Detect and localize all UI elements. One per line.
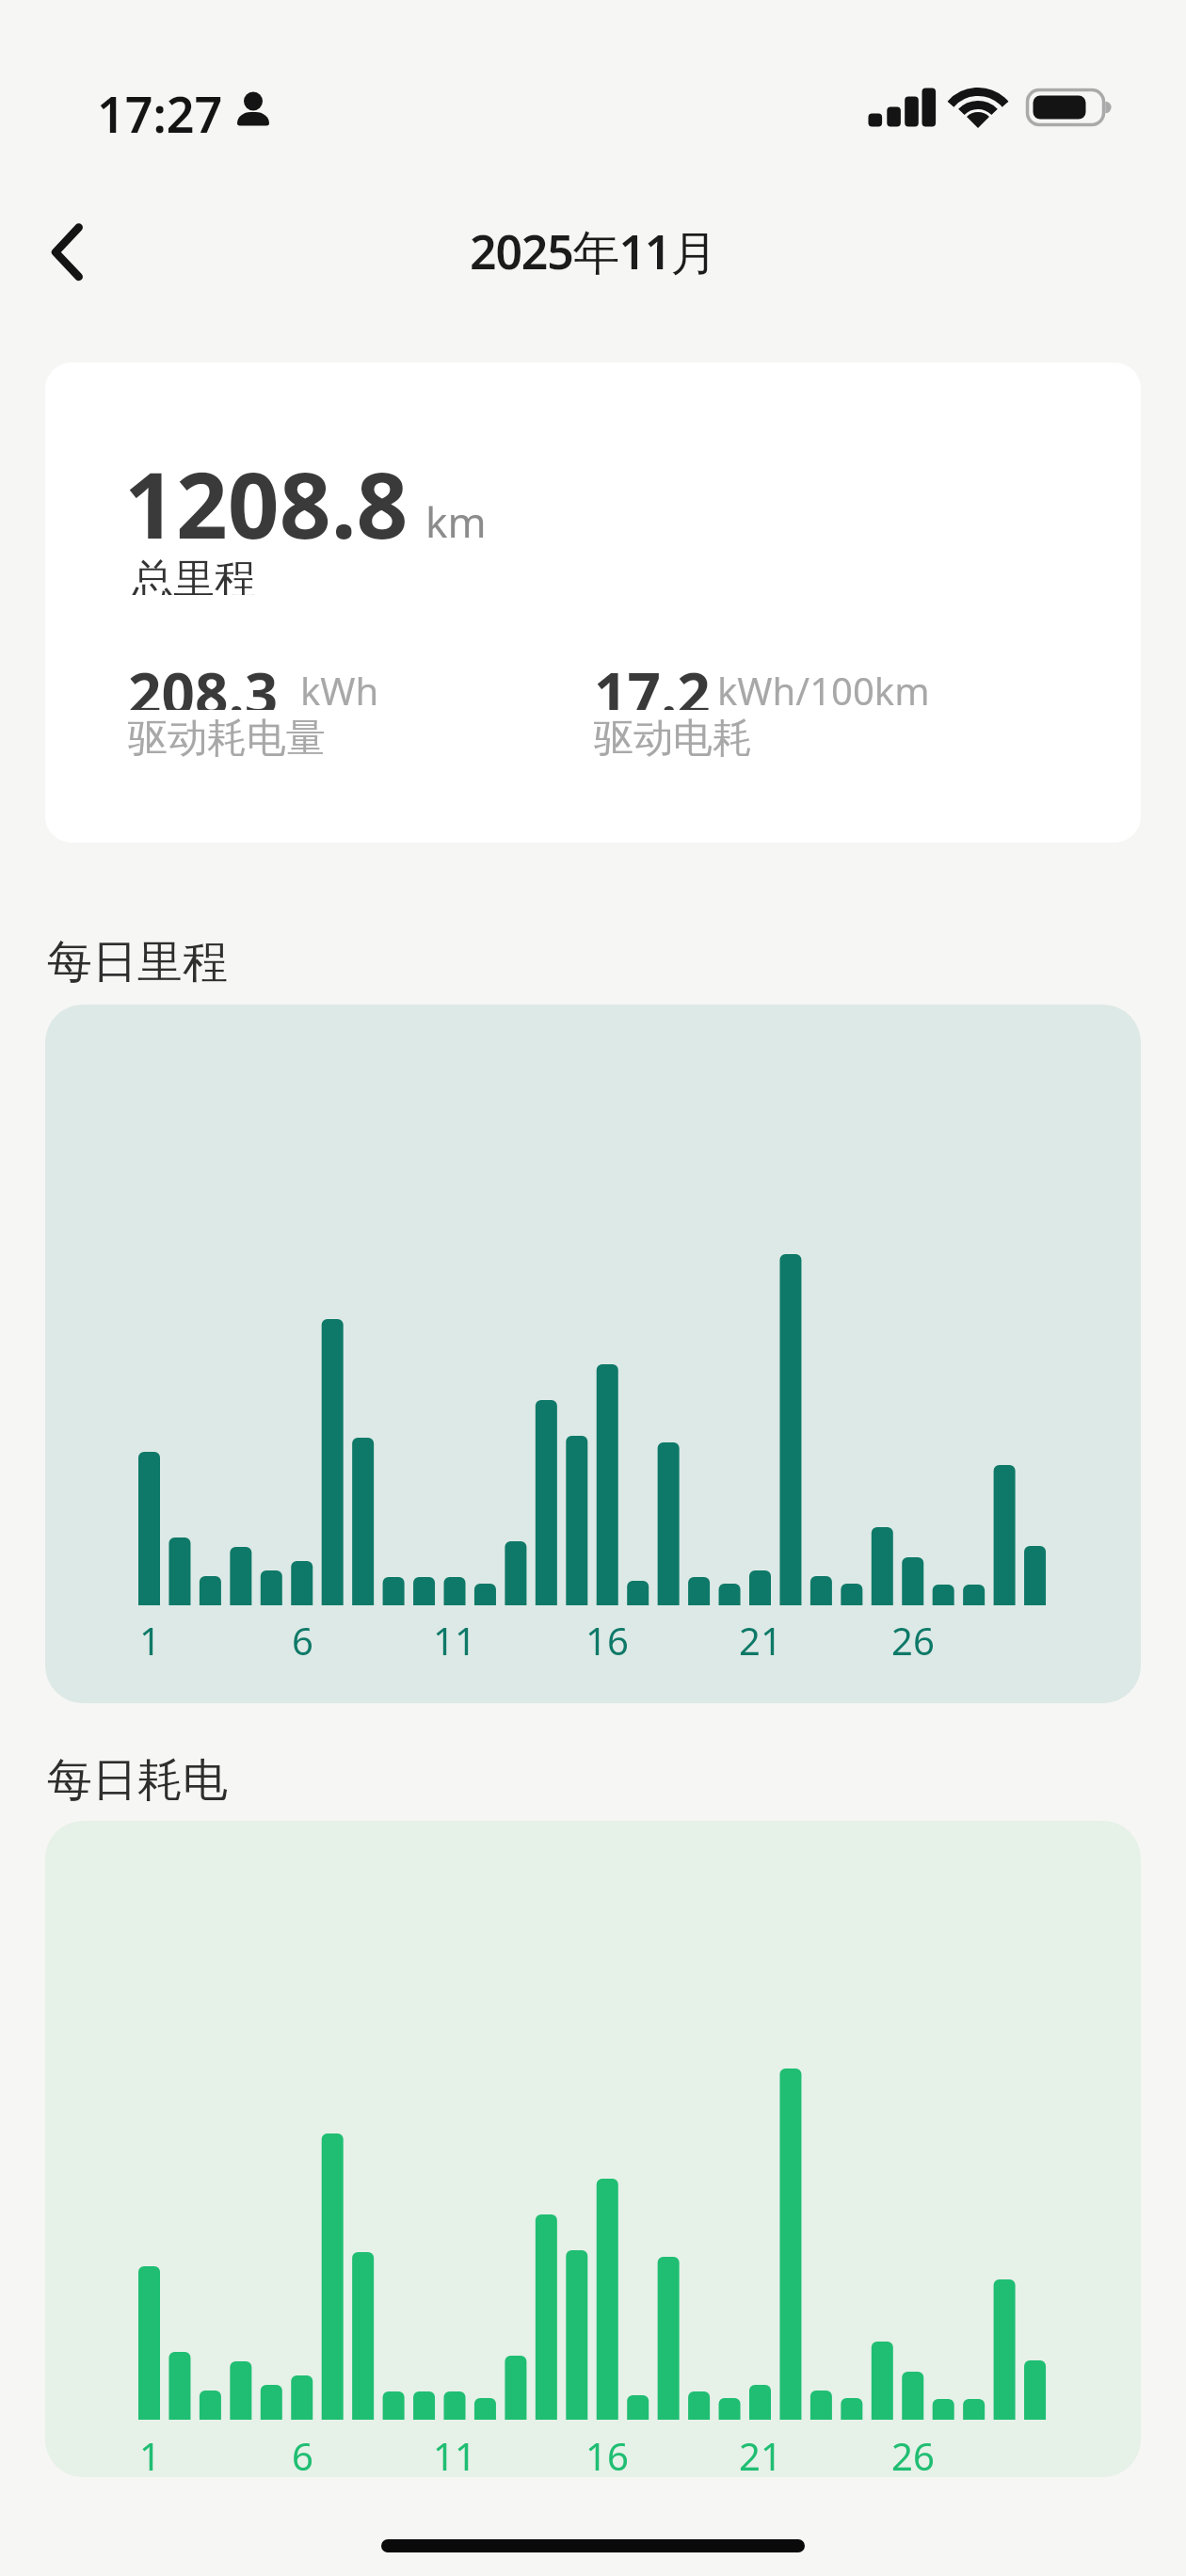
staticText: 6 — [292, 1615, 313, 1666]
staticText: 17.2 — [594, 653, 711, 710]
staticText: 总里程 — [132, 554, 256, 595]
staticText: 16 — [585, 1615, 629, 1666]
button[interactable] — [34, 209, 100, 294]
staticText: 每日里程 — [47, 934, 228, 983]
staticText: 驱动电耗 — [594, 714, 752, 759]
staticText: 17:27 — [97, 80, 223, 137]
staticText: 26 — [891, 1615, 935, 1666]
staticText: kWh/100km — [717, 665, 930, 714]
staticText: 6 — [292, 2430, 313, 2477]
staticText: 11 — [433, 2430, 476, 2477]
staticText: 21 — [739, 2430, 782, 2477]
staticText: 11 — [433, 1615, 476, 1666]
staticText: 2025年11月 — [470, 219, 716, 283]
staticText: 1208.8 — [124, 442, 409, 565]
staticText: 驱动耗电量 — [128, 714, 326, 759]
staticText: 21 — [739, 1615, 782, 1666]
staticText: 1 — [139, 1615, 161, 1666]
staticText: 每日耗电 — [47, 1752, 228, 1801]
staticText: 208.3 — [128, 653, 279, 710]
staticText: 16 — [585, 2430, 629, 2477]
staticText: km — [425, 493, 487, 546]
staticText: 26 — [891, 2430, 935, 2477]
staticText: 1 — [139, 2430, 161, 2477]
staticText: kWh — [300, 665, 379, 714]
